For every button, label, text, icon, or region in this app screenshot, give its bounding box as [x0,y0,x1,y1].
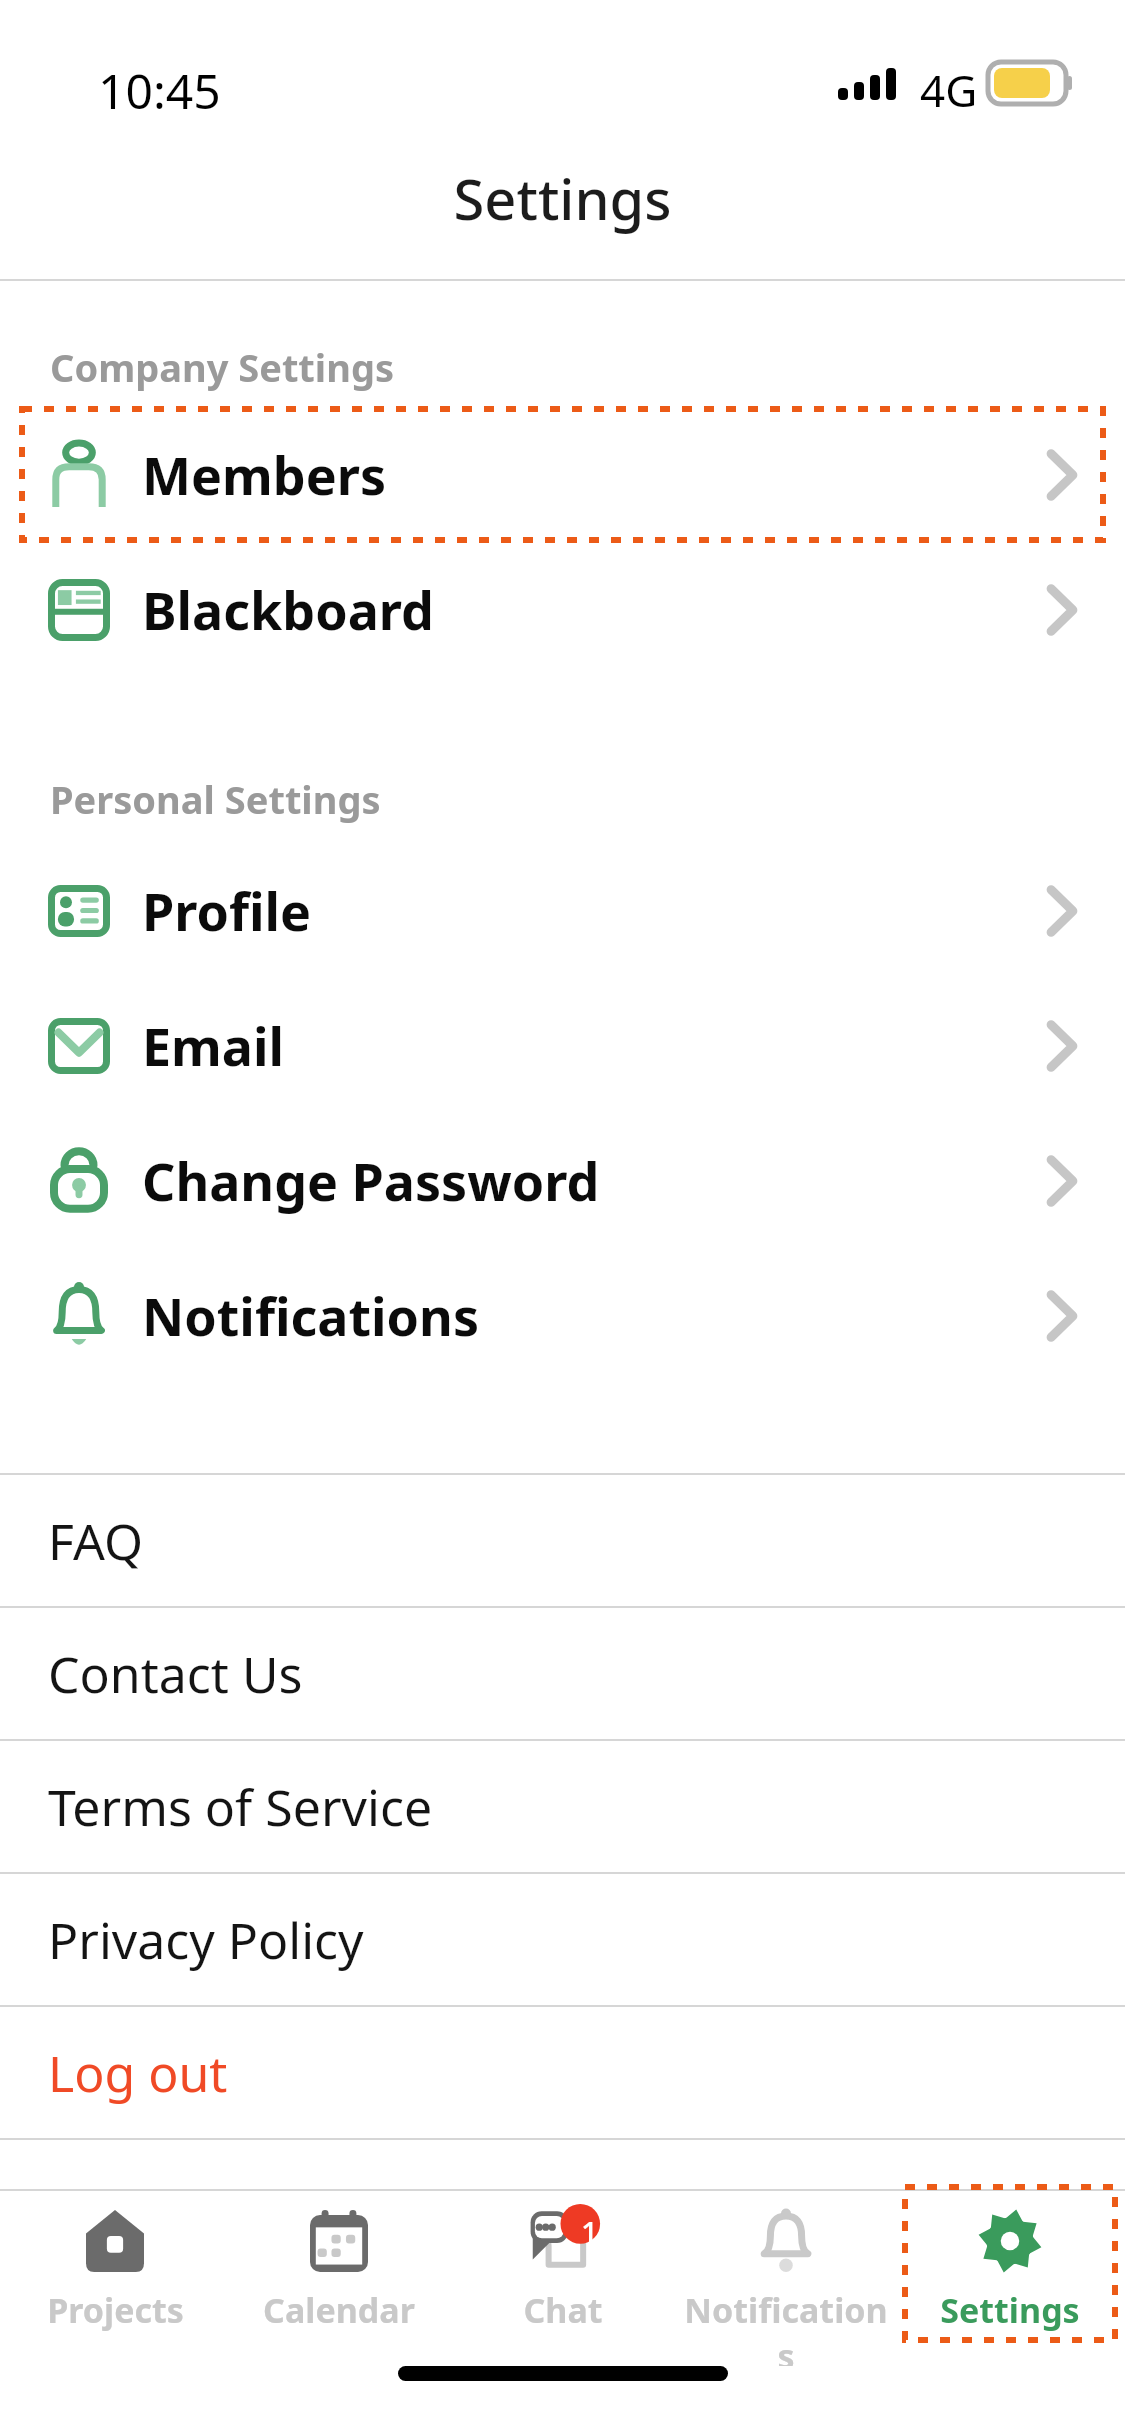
button[interactable]: Email [0,978,1125,1113]
button[interactable]: Notifications [677,2191,895,2366]
staticText: 4G [920,60,978,120]
staticText: Projects [47,2287,184,2333]
staticText: Profile [142,875,312,946]
staticText: Blackboard [142,574,434,645]
button[interactable]: Change Password [0,1113,1125,1248]
staticText: 10:45 [98,58,221,123]
button[interactable]: Blackboard [0,542,1125,677]
staticText: Contact Us [48,1640,303,1708]
staticText: Calendar [263,2287,415,2333]
button[interactable]: Privacy Policy [0,1874,1125,2005]
button[interactable]: Projects [6,2191,224,2366]
button[interactable]: Terms of Service [0,1741,1125,1872]
staticText: Settings [940,2287,1080,2333]
staticText: Settings [0,160,1125,236]
button[interactable]: Log out [0,2007,1125,2138]
staticText: Chat [523,2287,603,2333]
button[interactable]: Calendar [230,2191,448,2366]
staticText: Notifications [142,1280,480,1351]
staticText: Privacy Policy [48,1906,364,1974]
staticText: Members [142,439,387,510]
staticText: Change Password [142,1145,600,1216]
button[interactable]: Contact Us [0,1608,1125,1739]
button[interactable]: Profile [0,843,1125,978]
staticText: FAQ [48,1507,143,1575]
button[interactable]: Members [0,407,1125,542]
button[interactable]: FAQ [0,1475,1125,1606]
staticText: Log out [48,2039,228,2107]
button[interactable]: Notifications [0,1248,1125,1383]
staticText: Terms of Service [48,1773,433,1841]
staticText: Email [142,1010,285,1081]
button[interactable]: 1 [454,2191,672,2366]
staticText: 1 [581,2212,599,2253]
staticText: Personal Settings [50,773,381,825]
staticText: Notifications [677,2287,895,2366]
staticText: Company Settings [50,341,395,393]
button[interactable]: Settings [901,2191,1119,2366]
